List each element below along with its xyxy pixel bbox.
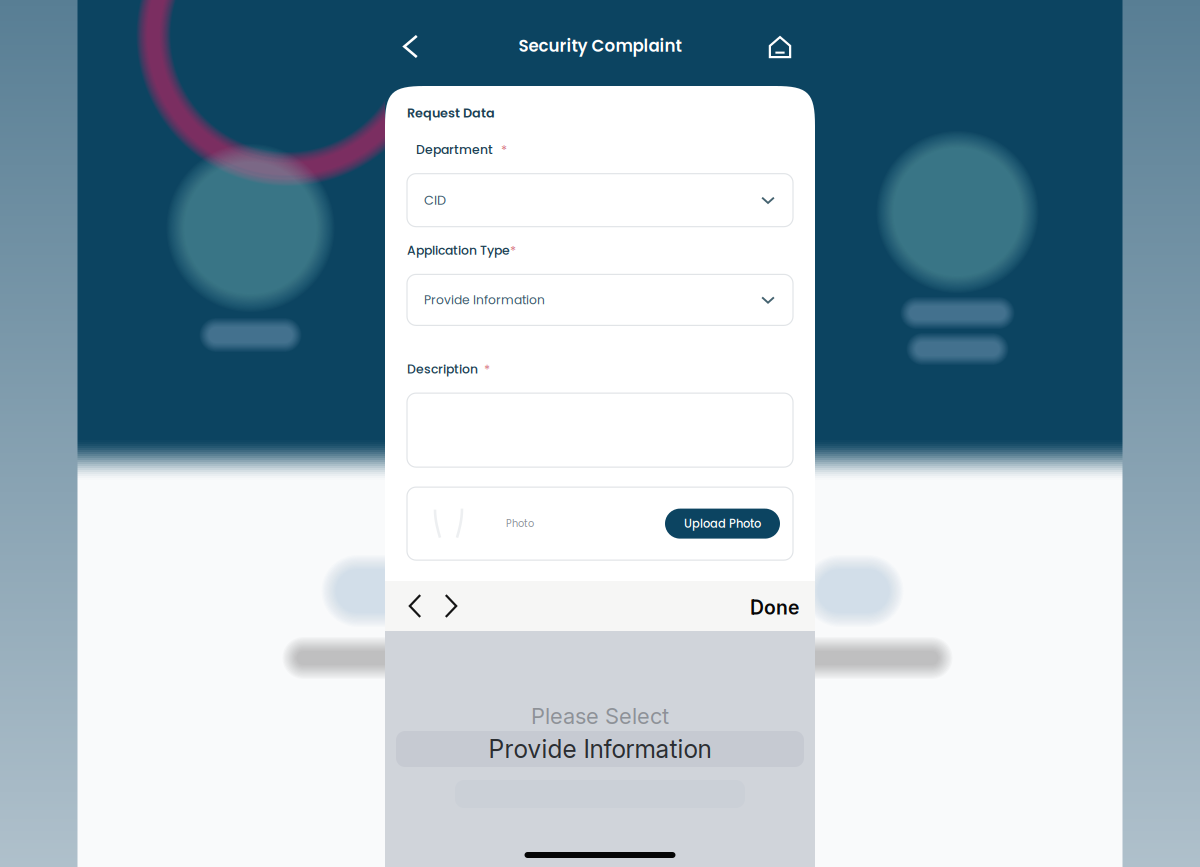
staticText: Description bbox=[407, 360, 478, 378]
staticText: Provide Information bbox=[488, 734, 711, 764]
staticText: Application Type bbox=[407, 242, 510, 259]
staticText: Security Complaint bbox=[518, 34, 681, 58]
button[interactable]: Upload Photo bbox=[665, 509, 780, 539]
staticText: Photo bbox=[506, 517, 534, 530]
staticText: Request Data bbox=[407, 104, 495, 122]
staticText: Done bbox=[750, 596, 799, 619]
button[interactable]: Done bbox=[746, 581, 803, 631]
staticText: Department bbox=[416, 141, 493, 158]
staticText: Provide Information bbox=[424, 291, 545, 308]
staticText: CID bbox=[424, 191, 446, 209]
button[interactable]: Home bbox=[758, 14, 802, 72]
button[interactable]: Provide Information bbox=[407, 274, 793, 325]
button[interactable]: CID bbox=[407, 174, 793, 227]
button[interactable]: Next field bbox=[433, 581, 469, 631]
staticText: * bbox=[501, 141, 507, 159]
staticText: Please Select bbox=[531, 703, 669, 729]
button[interactable]: Previous field bbox=[397, 581, 433, 631]
staticText: Upload Photo bbox=[684, 516, 761, 532]
staticText: * bbox=[484, 360, 490, 378]
staticText: * bbox=[510, 242, 516, 259]
button[interactable]: Back bbox=[389, 14, 433, 71]
